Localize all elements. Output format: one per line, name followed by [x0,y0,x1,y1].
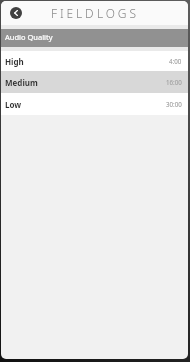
staticText: FIELD [51,5,97,21]
button[interactable]: Back [10,7,22,19]
staticText: 4:00 [169,57,182,65]
staticText: 16:00 [166,78,182,86]
button[interactable]: High [1,51,188,71]
button[interactable]: Medium [1,71,188,93]
staticText: High [5,56,24,67]
button[interactable]: Low [1,93,188,115]
staticText: LOGS [97,5,139,21]
staticText: Medium [5,77,38,88]
staticText: Low [5,99,22,110]
staticText: 30:00 [166,100,182,108]
staticText: Audio Quality [5,32,53,42]
